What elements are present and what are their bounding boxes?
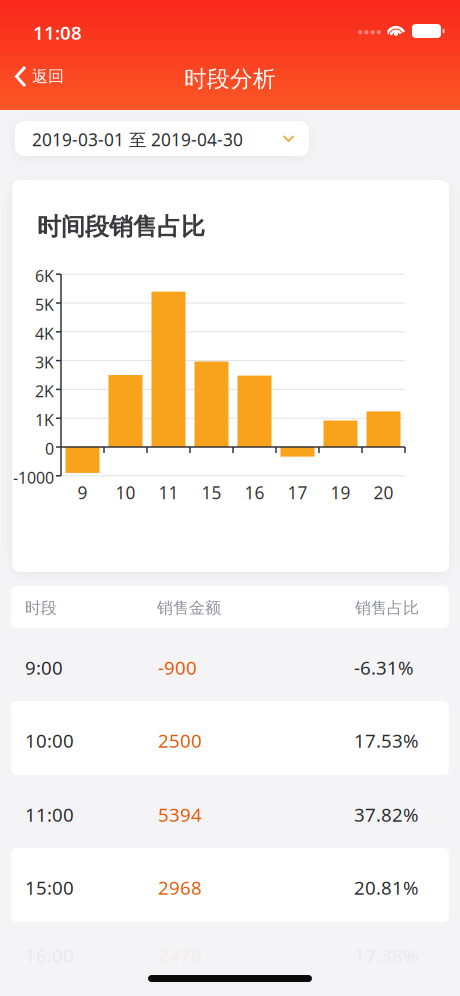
staticText: 15 xyxy=(201,481,221,504)
staticText: 2479 xyxy=(158,943,202,968)
button[interactable]: 返回 xyxy=(15,66,64,87)
staticText: 9:00 xyxy=(25,655,63,680)
staticText: 11:08 xyxy=(33,20,82,45)
staticText: 时段 xyxy=(25,598,57,618)
staticText: 时间段销售占比 xyxy=(37,212,205,241)
staticText: 37.82% xyxy=(354,802,419,827)
button[interactable]: 15:00 xyxy=(0,848,460,922)
staticText: 3K xyxy=(35,352,54,373)
staticText: 10:00 xyxy=(25,728,74,753)
staticText: 销售金额 xyxy=(157,598,221,618)
staticText: -1000 xyxy=(13,467,54,488)
staticText: 1K xyxy=(35,409,54,430)
staticText: 6K xyxy=(35,265,54,286)
staticText: -6.31% xyxy=(354,655,414,680)
staticText: 20.81% xyxy=(354,875,419,900)
staticText: 11 xyxy=(158,481,178,504)
staticText: 16:00 xyxy=(25,943,74,968)
staticText: 2019-03-01 至 2019-04-30 xyxy=(32,128,243,151)
staticText: 20 xyxy=(373,481,393,504)
staticText: 17.53% xyxy=(354,728,419,753)
staticText: 0 xyxy=(45,438,54,459)
staticText: 2K xyxy=(35,380,54,402)
button[interactable]: 10:00 xyxy=(0,701,460,775)
button[interactable]: 9:00 xyxy=(0,628,460,702)
staticText: 16 xyxy=(244,481,264,504)
staticText: 返回 xyxy=(32,67,64,86)
staticText: 17 xyxy=(287,481,307,504)
staticText: 2968 xyxy=(158,875,202,900)
staticText: 2500 xyxy=(158,728,202,753)
staticText: 19 xyxy=(330,481,350,504)
staticText: 4K xyxy=(35,323,54,344)
button[interactable]: 2019-03-01 至 2019-04-30 xyxy=(15,121,309,156)
button[interactable]: 16:00 xyxy=(0,916,460,990)
staticText: -900 xyxy=(158,655,197,680)
staticText: 销售占比 xyxy=(355,598,419,618)
staticText: 17.38% xyxy=(354,943,419,968)
staticText: 时段分析 xyxy=(184,65,276,93)
staticText: 11:00 xyxy=(25,802,74,827)
staticText: 5K xyxy=(35,294,54,315)
staticText: 5394 xyxy=(158,802,202,827)
button[interactable]: 11:00 xyxy=(0,775,460,849)
staticText: 15:00 xyxy=(25,875,74,900)
staticText: 9 xyxy=(77,481,87,504)
staticText: 10 xyxy=(115,481,135,504)
